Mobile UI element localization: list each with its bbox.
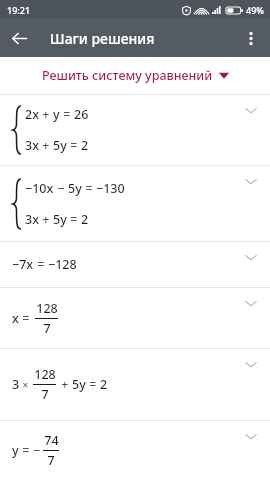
staticText: y [53, 106, 60, 123]
staticText: 5y [53, 137, 67, 154]
staticText: Шаги решения [50, 29, 155, 48]
staticText: y [12, 442, 19, 459]
button[interactable]: x [0, 288, 270, 348]
staticText: x [12, 310, 19, 327]
staticText: + [39, 106, 53, 123]
staticText: = [86, 376, 100, 393]
staticText: 5y [72, 376, 86, 393]
staticText: + [39, 137, 53, 154]
staticText: 2 [100, 376, 108, 393]
staticText: = [67, 137, 81, 154]
staticText: 49% [246, 4, 264, 16]
staticText: + [58, 376, 72, 393]
button[interactable]: Back [0, 19, 38, 57]
staticText: 5y [68, 180, 82, 197]
staticText: 128 [34, 366, 56, 383]
staticText: = [82, 180, 96, 197]
staticText: 7 [43, 320, 51, 337]
staticText: 7 [41, 386, 49, 403]
button[interactable]: 3 [0, 349, 270, 420]
staticText: + [39, 211, 53, 228]
staticText: 2 [81, 211, 89, 228]
staticText: = [19, 442, 33, 459]
button[interactable]: y [0, 421, 270, 480]
staticText: 3x [25, 211, 39, 228]
button[interactable]: More options [232, 19, 270, 57]
staticText: = [34, 256, 48, 273]
staticText: 128 [36, 300, 58, 317]
staticText: −7x [12, 256, 34, 273]
staticText: = [60, 106, 74, 123]
staticText: 2x [25, 106, 39, 123]
button[interactable]: −10x [0, 166, 270, 241]
button[interactable]: 2x [0, 95, 270, 165]
staticText: × [20, 378, 31, 392]
staticText: 2 [81, 137, 89, 154]
staticText: = [67, 211, 81, 228]
button[interactable]: −7x [0, 242, 270, 287]
staticText: 74 [44, 432, 59, 449]
staticText: = [19, 310, 33, 327]
staticText: −130 [96, 180, 125, 197]
staticText: 26 [74, 106, 89, 123]
staticText: 19:21 [7, 4, 31, 16]
staticText: − [33, 442, 41, 459]
staticText: Решить систему уравнений [42, 67, 213, 84]
staticText: 5y [53, 211, 67, 228]
staticText: −10x [25, 180, 54, 197]
staticText: − [54, 180, 68, 197]
staticText: −128 [48, 256, 77, 273]
staticText: 7 [47, 452, 55, 469]
staticText: 3x [25, 137, 39, 154]
staticText: 3 [12, 376, 20, 393]
button[interactable]: Решить систему уравнений [0, 57, 270, 94]
